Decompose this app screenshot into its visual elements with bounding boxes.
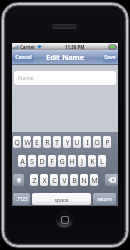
staticText: Edit Name xyxy=(46,52,85,62)
button[interactable]: .?123 xyxy=(13,193,30,205)
staticText: S xyxy=(30,156,34,166)
staticText: T xyxy=(55,137,59,147)
staticText: H xyxy=(69,156,75,166)
button[interactable]: A xyxy=(18,155,26,167)
staticText: D xyxy=(39,156,45,166)
button[interactable]: Q xyxy=(13,136,21,148)
staticText: N xyxy=(81,175,87,185)
button[interactable]: J xyxy=(78,155,86,167)
button[interactable]: Cancel xyxy=(13,52,34,63)
staticText: Carrier xyxy=(20,44,36,50)
staticText: space xyxy=(54,196,69,203)
button[interactable]: Shift xyxy=(13,174,24,186)
button[interactable]: H xyxy=(68,155,76,167)
button[interactable]: Name xyxy=(14,71,116,85)
button[interactable]: U xyxy=(73,136,81,148)
staticText: J xyxy=(81,156,83,166)
staticText: .?123 xyxy=(16,196,28,202)
staticText: V xyxy=(62,175,67,185)
button[interactable]: space xyxy=(32,193,91,205)
staticText: L xyxy=(100,156,104,166)
button[interactable]: D xyxy=(38,155,46,167)
staticText: G xyxy=(59,156,65,166)
button[interactable]: Home xyxy=(56,211,73,228)
button[interactable]: T xyxy=(53,136,61,148)
button[interactable]: V xyxy=(60,174,68,186)
staticText: B xyxy=(72,175,77,185)
staticText: Q xyxy=(14,137,20,147)
button[interactable]: X xyxy=(40,174,48,186)
staticText: O xyxy=(94,137,100,147)
button[interactable]: G xyxy=(58,155,66,167)
staticText: Z xyxy=(32,175,37,185)
button[interactable]: W xyxy=(23,136,31,148)
staticText: E xyxy=(35,137,39,147)
button[interactable]: O xyxy=(93,136,101,148)
button[interactable]: S xyxy=(28,155,36,167)
button[interactable]: N xyxy=(80,174,88,186)
button[interactable]: I xyxy=(83,136,91,148)
button[interactable]: Backspace xyxy=(105,174,118,186)
button[interactable]: Y xyxy=(63,136,71,148)
button[interactable]: K xyxy=(88,155,96,167)
staticText: F xyxy=(50,156,54,166)
staticText: C xyxy=(52,175,57,185)
button[interactable]: F xyxy=(48,155,56,167)
button[interactable]: return xyxy=(93,193,116,205)
button[interactable]: C xyxy=(50,174,58,186)
staticText: M xyxy=(91,175,98,185)
button[interactable]: E xyxy=(33,136,41,148)
button[interactable]: L xyxy=(98,155,106,167)
button[interactable]: M xyxy=(90,174,98,186)
staticText: X xyxy=(42,175,47,185)
staticText: Save xyxy=(104,54,116,61)
staticText: P xyxy=(105,137,110,147)
button[interactable]: B xyxy=(70,174,78,186)
staticText: Cancel xyxy=(15,54,32,61)
staticText: K xyxy=(90,156,95,166)
staticText: 11:36 PM xyxy=(65,44,85,50)
staticText: W xyxy=(24,137,31,147)
staticText: I xyxy=(86,137,89,147)
staticText: Y xyxy=(65,137,70,147)
button[interactable]: P xyxy=(103,136,111,148)
staticText: Name xyxy=(18,74,34,82)
staticText: U xyxy=(74,137,80,147)
staticText: A xyxy=(20,156,25,166)
button[interactable]: Save xyxy=(103,52,117,63)
staticText: return xyxy=(97,196,112,203)
button[interactable]: R xyxy=(43,136,51,148)
button[interactable]: Z xyxy=(30,174,38,186)
staticText: R xyxy=(45,137,50,147)
